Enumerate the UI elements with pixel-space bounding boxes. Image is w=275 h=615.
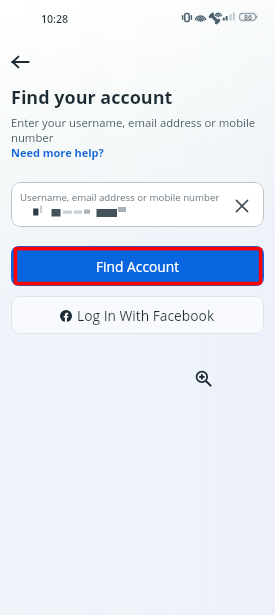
staticText: Enter your username, email address or mo… [11, 115, 256, 145]
button[interactable]: Find Account [11, 246, 264, 286]
button[interactable]: Clear text [225, 189, 258, 222]
button[interactable]: Need more help? [11, 145, 104, 160]
button[interactable]: Back [2, 44, 37, 79]
button[interactable]: Log In With Facebook [11, 296, 264, 334]
staticText: Find Account [96, 257, 180, 276]
staticText: Username, email address or mobile number [20, 191, 220, 204]
staticText: Log In With Facebook [77, 306, 215, 325]
staticText: 10:28 [41, 12, 69, 26]
staticText: Find your account [11, 85, 173, 110]
staticText: Need more help? [11, 145, 104, 160]
button[interactable]: Username, email address or mobile number [11, 182, 264, 227]
staticText: 86 [244, 13, 252, 21]
